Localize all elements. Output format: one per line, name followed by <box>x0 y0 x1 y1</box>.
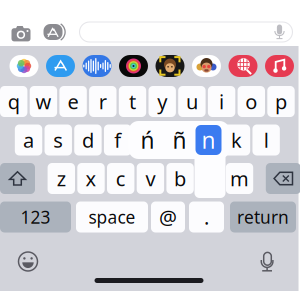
staticText: u <box>186 88 198 115</box>
button[interactable]: o <box>238 86 265 117</box>
button[interactable]: App <box>46 55 75 77</box>
staticText: b <box>174 165 186 192</box>
button[interactable]: z <box>48 163 75 194</box>
button[interactable]: App <box>192 55 221 77</box>
button[interactable]: Shift <box>0 163 35 194</box>
button[interactable]: App <box>155 55 184 77</box>
staticText: . <box>204 204 209 230</box>
button[interactable]: App <box>82 55 111 77</box>
button[interactable]: h <box>163 124 191 155</box>
staticText: @ <box>159 204 177 230</box>
staticText: ń <box>140 125 154 155</box>
button[interactable]: y <box>148 86 176 117</box>
staticText: y <box>157 88 167 115</box>
staticText: o <box>245 88 257 115</box>
staticText: r <box>99 88 107 115</box>
button[interactable]: Message field <box>79 22 292 42</box>
button[interactable]: x <box>77 163 105 194</box>
button[interactable]: n <box>195 125 221 155</box>
staticText: e <box>68 88 79 115</box>
button[interactable]: j <box>193 124 220 155</box>
staticText: z <box>57 165 66 192</box>
button[interactable]: b <box>166 163 194 194</box>
button[interactable]: m <box>226 163 253 194</box>
button[interactable]: l <box>252 124 280 155</box>
button[interactable]: a <box>15 124 42 155</box>
staticText: j <box>204 127 209 153</box>
staticText: k <box>231 127 242 153</box>
staticText: l <box>264 127 269 153</box>
button[interactable]: r <box>89 86 116 117</box>
button[interactable]: u <box>178 86 206 117</box>
button[interactable]: f <box>104 124 131 155</box>
staticText: n <box>201 125 215 155</box>
staticText: f <box>114 127 121 153</box>
button[interactable]: Camera <box>11 24 30 40</box>
button[interactable]: App <box>228 55 257 77</box>
button[interactable]: Delete <box>266 163 300 194</box>
staticText: i <box>219 88 224 115</box>
staticText: m <box>230 165 249 192</box>
button[interactable]: q <box>0 86 27 117</box>
staticText: v <box>145 165 155 192</box>
button[interactable]: 123 <box>0 201 71 232</box>
button[interactable]: App <box>265 55 294 77</box>
button[interactable]: Emoji keyboard <box>18 252 37 271</box>
staticText: return <box>237 205 289 228</box>
button[interactable]: ń <box>131 121 163 159</box>
staticText: q <box>8 88 20 115</box>
button[interactable]: Dictate <box>260 250 274 270</box>
button[interactable]: App <box>119 55 148 77</box>
staticText: w <box>35 88 51 115</box>
button[interactable]: @ <box>151 201 185 232</box>
button[interactable]: s <box>44 124 72 155</box>
staticText: x <box>85 165 96 192</box>
button[interactable]: ñ <box>163 121 195 159</box>
staticText: ñ <box>172 125 186 155</box>
staticText: s <box>53 127 63 153</box>
staticText: 123 <box>20 205 50 228</box>
staticText: h <box>171 127 183 153</box>
staticText: d <box>82 127 94 153</box>
staticText: g <box>141 127 153 153</box>
staticText: p <box>275 88 287 115</box>
button[interactable]: space <box>76 201 148 232</box>
button[interactable]: App Store <box>43 24 66 40</box>
button[interactable]: t <box>119 86 146 117</box>
button[interactable]: w <box>30 86 57 117</box>
button[interactable]: g <box>134 124 161 155</box>
staticText: a <box>23 127 34 153</box>
staticText: space <box>88 205 135 228</box>
staticText: c <box>116 165 126 192</box>
button[interactable]: return <box>230 201 296 232</box>
button[interactable]: c <box>107 163 134 194</box>
button[interactable]: e <box>59 86 87 117</box>
button[interactable]: i <box>208 86 235 117</box>
button[interactable]: App <box>9 55 38 77</box>
button[interactable]: p <box>267 86 295 117</box>
button[interactable]: d <box>74 124 102 155</box>
button[interactable]: k <box>223 124 250 155</box>
button[interactable]: . <box>189 201 224 232</box>
button[interactable]: v <box>137 163 164 194</box>
staticText: t <box>129 88 136 115</box>
